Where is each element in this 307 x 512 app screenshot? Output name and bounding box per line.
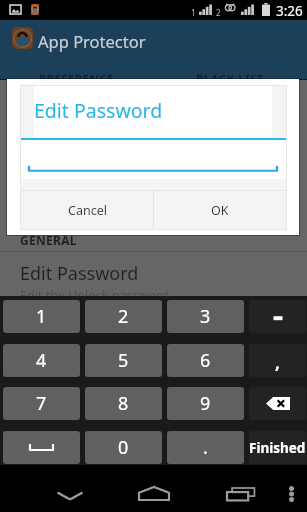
button[interactable]: More options bbox=[275, 465, 307, 512]
staticText: Finished bbox=[249, 439, 306, 457]
button[interactable]: OK bbox=[154, 191, 286, 229]
button[interactable]: Recents bbox=[210, 465, 270, 512]
button[interactable]: 0 bbox=[85, 431, 162, 464]
staticText: , bbox=[275, 351, 280, 374]
button[interactable]: - bbox=[249, 300, 306, 333]
staticText: . bbox=[203, 435, 208, 460]
staticText: GENERAL bbox=[20, 232, 77, 248]
staticText: Edit Password bbox=[20, 261, 139, 286]
button[interactable]: Cancel bbox=[21, 191, 153, 229]
staticText: 2 bbox=[216, 7, 221, 18]
button[interactable]: 4 bbox=[3, 344, 80, 377]
staticText: Edit the Unlock password bbox=[20, 287, 169, 304]
button[interactable]: . bbox=[167, 431, 244, 464]
button[interactable]: 3 bbox=[167, 300, 244, 333]
staticText: 1 bbox=[36, 304, 47, 329]
staticText: BLACK LIST bbox=[196, 71, 264, 86]
staticText: PREFERENCE bbox=[39, 71, 114, 86]
button[interactable]: Finished bbox=[249, 431, 306, 464]
button[interactable]: Space bbox=[3, 431, 80, 464]
button[interactable]: 5 bbox=[85, 344, 162, 377]
button[interactable]: Edit Password bbox=[0, 261, 307, 303]
staticText: 2 bbox=[118, 304, 129, 329]
button[interactable]: 8 bbox=[85, 387, 162, 420]
button[interactable]: Back bbox=[39, 465, 100, 512]
button[interactable]: Home bbox=[124, 465, 184, 512]
button[interactable]: Backspace bbox=[249, 387, 306, 420]
button[interactable]: App Protector bbox=[0, 20, 307, 59]
staticText: 1 bbox=[191, 7, 196, 18]
staticText: 0 bbox=[118, 435, 129, 460]
button[interactable]: 7 bbox=[3, 387, 80, 420]
staticText: Cancel bbox=[68, 202, 107, 219]
button[interactable]: 6 bbox=[167, 344, 244, 377]
staticText: 3:26 bbox=[276, 2, 303, 20]
staticText: 8 bbox=[118, 391, 129, 416]
staticText: 7 bbox=[36, 391, 47, 416]
button[interactable]: 1 bbox=[3, 300, 80, 333]
button[interactable]: 2 bbox=[85, 300, 162, 333]
staticText: 6 bbox=[200, 348, 211, 373]
button[interactable]: , bbox=[249, 344, 306, 377]
staticText: OK bbox=[211, 202, 229, 219]
staticText: 4 bbox=[36, 348, 47, 373]
staticText: App Protector bbox=[38, 30, 146, 52]
staticText: 5 bbox=[118, 348, 129, 373]
button[interactable]: PREFERENCE bbox=[0, 59, 153, 80]
button[interactable]: BLACK LIST bbox=[153, 59, 307, 80]
staticText: 9 bbox=[200, 391, 211, 416]
staticText: 3 bbox=[200, 304, 211, 329]
button[interactable]: 9 bbox=[167, 387, 244, 420]
staticText: Edit Password bbox=[34, 97, 163, 124]
